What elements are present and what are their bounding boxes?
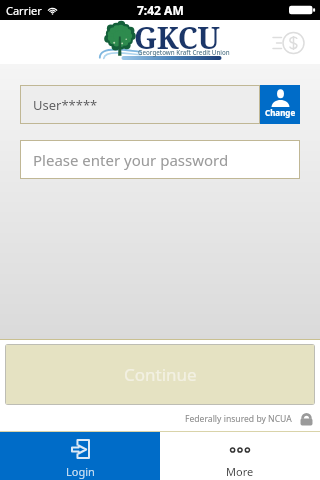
staticText: 7:42 AM [137,2,184,18]
button[interactable]: User***** [20,85,260,124]
staticText: GKCU [134,17,220,58]
button[interactable]: Please enter your password [20,140,300,179]
staticText: Change [265,107,296,118]
button[interactable]: More [160,432,320,480]
staticText: Continue [124,363,197,386]
button[interactable]: Quick balance [269,27,309,59]
button[interactable]: Change [260,85,300,124]
button[interactable]: Login [0,432,160,480]
staticText: Georgetown Kraft Credit Union [138,48,230,56]
staticText: Federally insured by NCUA [185,413,292,425]
staticText: Login [66,464,95,479]
button[interactable]: Continue [6,345,314,404]
staticText: Please enter your password [33,150,229,170]
staticText: More [226,464,254,479]
staticText: User***** [33,96,98,114]
staticText: Carrier [6,3,42,18]
